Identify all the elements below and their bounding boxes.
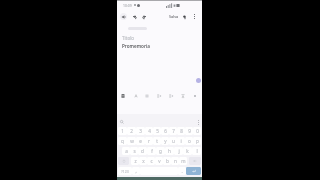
button[interactable]: Shift [118,157,129,165]
button[interactable]: 0 [193,127,201,135]
button[interactable]: q [118,137,127,145]
staticText: 8 [180,128,183,134]
staticText: m [181,158,186,164]
button[interactable]: Assistant [196,78,201,83]
button[interactable]: Pin note [181,13,188,20]
staticText: 9 [188,128,191,134]
staticText: Salva [169,14,179,19]
button[interactable]: c [147,157,155,165]
staticText: t [156,138,158,144]
staticText: b [166,158,169,164]
button[interactable]: Underline [143,92,150,99]
button[interactable]: t [153,137,161,145]
button[interactable]: z [131,157,139,165]
staticText: h [168,148,171,154]
button[interactable]: h [165,147,174,155]
button[interactable]: , [132,167,140,175]
button[interactable]: 6 [161,127,169,135]
button[interactable]: 3 [136,127,145,135]
staticText: v [158,158,161,164]
staticText: o [188,138,191,144]
button[interactable]: r [145,137,153,145]
button[interactable]: Outdent [191,92,198,99]
button[interactable]: Search [119,119,125,125]
button[interactable]: u [169,137,177,145]
button[interactable]: n [171,157,179,165]
button[interactable]: 8 [177,127,185,135]
button[interactable]: o [185,137,193,145]
button[interactable]: g [156,147,165,155]
button[interactable]: Indent [179,92,186,99]
staticText: ?123 [121,169,129,174]
staticText: f [151,148,153,154]
staticText: 0 [196,128,199,134]
staticText: Promemoria [122,43,150,49]
button[interactable]: d [138,147,147,155]
button[interactable]: More options [191,13,198,20]
button[interactable]: Numbered list [167,92,174,99]
staticText: r [148,138,150,144]
staticText: c [150,158,153,164]
button[interactable]: Bulleted list [155,92,162,99]
staticText: l [196,148,198,154]
staticText: 5 [156,128,159,134]
staticText: j [178,148,180,154]
staticText: 10:09 [123,3,132,8]
button[interactable]: Keyboard options [195,119,201,125]
button[interactable]: Back [120,13,127,20]
staticText: y [164,138,167,144]
button[interactable]: ?123 [118,167,132,175]
button[interactable]: f [147,147,156,155]
button[interactable]: l [192,147,201,155]
button[interactable]: 7 [169,127,177,135]
staticText: w [130,138,134,144]
button[interactable]: 5 [153,127,161,135]
button[interactable]: v [155,157,163,165]
button[interactable]: e [136,137,145,145]
staticText: s [133,148,136,154]
staticText: . [181,168,183,174]
button[interactable]: 4 [145,127,153,135]
staticText: z [134,158,137,164]
button[interactable]: j [174,147,183,155]
staticText: , [135,168,137,174]
staticText: i [180,138,182,144]
button[interactable]: s [130,147,138,155]
staticText: x [142,158,145,164]
button[interactable]: Undo [131,13,138,20]
button[interactable]: m [179,157,187,165]
button[interactable]: Italic [132,92,139,99]
button[interactable]: b [163,157,171,165]
staticText: a [125,148,128,154]
button[interactable]: w [127,137,136,145]
staticText: u [172,138,175,144]
button[interactable]: 2 [127,127,136,135]
staticText: g [159,148,162,154]
staticText: 1 [121,128,124,134]
staticText: e [139,138,142,144]
button[interactable]: 1 [118,127,127,135]
button[interactable]: Redo [140,13,147,20]
button[interactable]: x [139,157,147,165]
button[interactable]: 9 [185,127,193,135]
button[interactable]: . [178,167,186,175]
button[interactable]: a [122,147,130,155]
staticText: q [121,138,124,144]
staticText: 7 [172,128,175,134]
button[interactable]: Backspace [189,157,201,165]
button[interactable]: i [177,137,185,145]
button[interactable]: Bold [119,92,126,99]
staticText: Titolo [122,35,135,41]
button[interactable]: Enter [186,167,201,175]
staticText: 3 [139,128,142,134]
staticText: d [141,148,144,154]
button[interactable]: k [183,147,192,155]
button[interactable]: Salva [169,12,179,20]
staticText: p [196,138,199,144]
staticText: k [186,148,189,154]
button[interactable]: p [193,137,201,145]
staticText: n [174,158,177,164]
staticText: 2 [130,128,133,134]
button[interactable]: y [161,137,169,145]
